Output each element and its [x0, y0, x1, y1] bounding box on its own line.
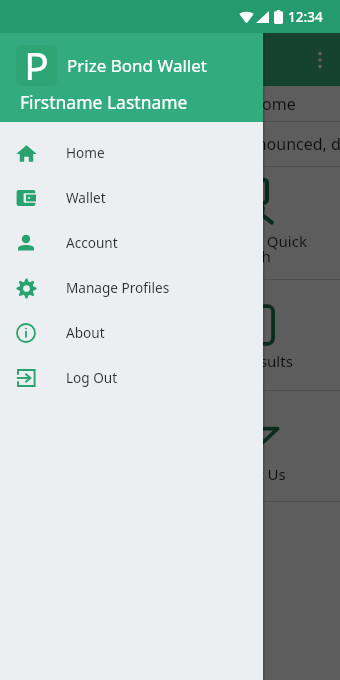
- button[interactable]: Log Out: [0, 356, 263, 401]
- staticText: No draw announced, draw date: [170, 133, 340, 155]
- staticText: Manage Profiles: [66, 278, 170, 297]
- button[interactable]: Draw Results: [0, 280, 340, 390]
- button[interactable]: Contact Us: [0, 391, 340, 501]
- staticText: Wallet: [66, 188, 106, 207]
- staticText: Prize Bond Wallet: [16, 48, 156, 71]
- button[interactable]: More options: [300, 33, 340, 86]
- button[interactable]: Manage Profiles: [0, 266, 263, 311]
- staticText: Draw Results: [201, 351, 293, 371]
- staticText: Firstname Lastname: [20, 90, 188, 114]
- staticText: Welcome Home: [177, 93, 296, 115]
- staticText: Contact Us: [209, 464, 286, 484]
- staticText: Log Out: [66, 368, 118, 387]
- staticText: Account: [66, 233, 118, 252]
- button[interactable]: Wallet: [0, 176, 263, 221]
- staticText: 12:34: [288, 7, 323, 26]
- staticText: About: [66, 323, 105, 342]
- button[interactable]: About: [0, 311, 263, 356]
- button[interactable]: Home: [0, 131, 263, 176]
- staticText: Prize Bond Wallet: [67, 54, 207, 77]
- button[interactable]: Prize Bond Quick Search: [0, 167, 340, 279]
- staticText: Home: [66, 143, 105, 162]
- staticText: P: [24, 45, 49, 80]
- staticText: Prize Bond Quick Search: [187, 231, 307, 266]
- button[interactable]: Account: [0, 221, 263, 266]
